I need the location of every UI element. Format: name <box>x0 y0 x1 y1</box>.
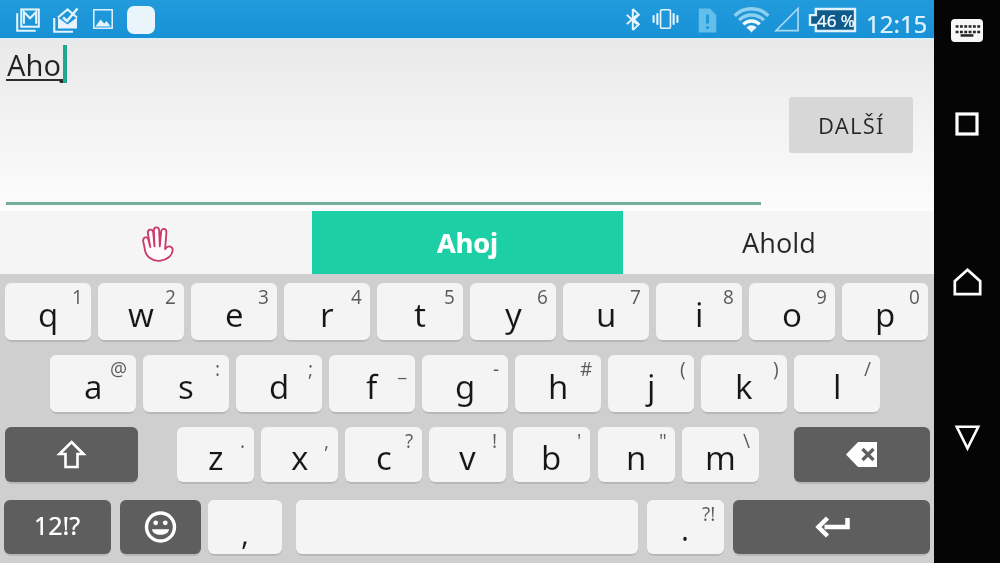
button[interactable]: Home <box>943 258 991 306</box>
staticText: ( <box>680 356 686 382</box>
staticText: : <box>215 356 221 382</box>
staticText: c <box>376 435 392 480</box>
staticText: 0 <box>909 284 920 310</box>
button[interactable]: d <box>236 355 322 412</box>
button[interactable]: j <box>608 355 694 412</box>
button[interactable]: . <box>647 500 724 554</box>
staticText: # <box>580 356 593 382</box>
button[interactable]: b <box>513 427 590 482</box>
staticText: 1 <box>72 284 83 310</box>
staticText: / <box>864 356 872 382</box>
button[interactable]: e <box>191 283 277 340</box>
staticText: 12:15 <box>866 7 928 40</box>
button[interactable]: a <box>50 355 136 412</box>
staticText: ; <box>308 356 314 382</box>
staticText: 6 <box>537 284 548 310</box>
staticText: b <box>541 435 562 480</box>
staticText: ' <box>577 428 582 454</box>
staticText: 2 <box>165 284 176 310</box>
staticText: e <box>225 292 244 337</box>
button[interactable]: l <box>794 355 880 412</box>
staticText: l <box>833 364 842 409</box>
button[interactable]: x <box>261 427 338 482</box>
button[interactable]: t <box>377 283 463 340</box>
staticText: DALŠÍ <box>818 110 885 140</box>
button[interactable]: f <box>329 355 415 412</box>
staticText: q <box>38 292 59 337</box>
staticText: i <box>695 292 704 337</box>
button[interactable]: Shift <box>5 427 138 482</box>
staticText: , <box>241 513 250 554</box>
staticText: x <box>291 435 309 480</box>
staticText: s <box>178 364 194 409</box>
staticText: ?! <box>702 501 716 527</box>
staticText: " <box>659 428 667 454</box>
staticText: y <box>505 292 522 337</box>
staticText: ! <box>492 428 498 454</box>
staticText: _ <box>398 356 407 382</box>
staticText: 4 <box>351 284 362 310</box>
staticText: o <box>782 292 802 337</box>
staticText: r <box>320 292 334 337</box>
staticText: . <box>681 509 690 550</box>
staticText: n <box>626 435 647 480</box>
staticText: h <box>548 364 569 409</box>
staticText: d <box>269 364 290 409</box>
staticText: u <box>596 292 617 337</box>
button[interactable]: q <box>5 283 91 340</box>
staticText: z <box>208 435 224 480</box>
button[interactable]: w <box>98 283 184 340</box>
button[interactable]: h <box>515 355 601 412</box>
staticText: m <box>705 435 736 480</box>
staticText: . <box>240 428 246 454</box>
button[interactable]: Ahold <box>623 211 934 274</box>
button[interactable]: Enter <box>733 500 930 554</box>
button[interactable]: r <box>284 283 370 340</box>
button[interactable]: m <box>682 427 759 482</box>
staticText: Ahoj <box>7 45 69 84</box>
staticText: ? <box>405 428 414 454</box>
staticText: - <box>493 356 500 382</box>
staticText: v <box>459 435 476 480</box>
staticText: p <box>875 292 896 337</box>
button[interactable]: y <box>470 283 556 340</box>
button[interactable]: v <box>429 427 506 482</box>
button[interactable]: o <box>749 283 835 340</box>
staticText: Ahold <box>742 224 816 261</box>
button[interactable]: c <box>345 427 422 482</box>
button[interactable]: Show keyboard <box>943 11 991 49</box>
button[interactable]: Emoji suggestion <box>132 219 180 267</box>
staticText: t <box>414 292 426 337</box>
button[interactable]: n <box>598 427 675 482</box>
button[interactable]: DALŠÍ <box>789 97 913 153</box>
button[interactable]: Recents <box>943 100 991 148</box>
button[interactable]: Back <box>943 413 991 461</box>
button[interactable]: , <box>208 500 282 554</box>
button[interactable]: Ahoj <box>312 211 623 274</box>
staticText: f <box>366 364 378 409</box>
button[interactable]: 12!? <box>4 500 111 554</box>
staticText: w <box>128 292 154 337</box>
staticText: j <box>647 364 656 409</box>
staticText: 8 <box>723 284 734 310</box>
staticText: g <box>455 364 476 409</box>
button[interactable]: s <box>143 355 229 412</box>
staticText: a <box>84 364 103 409</box>
staticText: 5 <box>444 284 455 310</box>
staticText: Ahoj <box>437 224 499 261</box>
staticText: , <box>324 428 330 454</box>
staticText: 3 <box>258 284 269 310</box>
button[interactable]: i <box>656 283 742 340</box>
button[interactable]: Emoji <box>120 500 201 554</box>
staticText: 12!? <box>34 508 81 542</box>
button[interactable]: k <box>701 355 787 412</box>
button[interactable]: z <box>177 427 254 482</box>
button[interactable]: p <box>842 283 928 340</box>
staticText: \ <box>743 428 751 454</box>
button[interactable]: Backspace <box>794 427 930 482</box>
button[interactable]: g <box>422 355 508 412</box>
staticText: @ <box>110 356 128 382</box>
button[interactable]: u <box>563 283 649 340</box>
staticText: 9 <box>816 284 827 310</box>
